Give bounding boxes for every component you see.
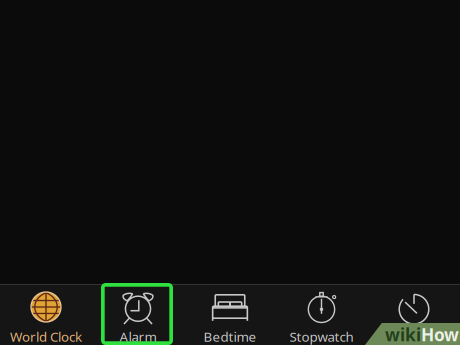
- button[interactable]: Bedtime: [184, 285, 276, 345]
- button[interactable]: Timer: [368, 285, 460, 345]
- staticText: Stopwatch: [289, 328, 353, 345]
- staticText: Timer: [396, 328, 432, 345]
- staticText: wiki: [385, 323, 421, 345]
- button[interactable]: Alarm: [92, 285, 184, 345]
- button[interactable]: World Clock: [0, 285, 92, 345]
- button[interactable]: Stopwatch: [275, 285, 367, 345]
- staticText: Bedtime: [203, 328, 256, 345]
- staticText: Alarm: [119, 328, 156, 345]
- staticText: World Clock: [10, 328, 82, 345]
- staticText: How: [421, 323, 459, 345]
